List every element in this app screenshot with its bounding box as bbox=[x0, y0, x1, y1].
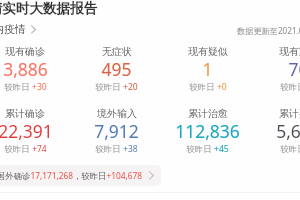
button[interactable]: 累计确诊 bbox=[0, 107, 71, 155]
staticText: 较昨日 +45 bbox=[186, 143, 229, 155]
staticText: 3,886 bbox=[3, 57, 48, 81]
button[interactable]: 现有确诊 bbox=[0, 45, 71, 93]
button[interactable]: 现有重症 bbox=[253, 45, 300, 93]
staticText: 无症状 bbox=[102, 45, 132, 58]
staticText: 累计确诊 bbox=[5, 107, 45, 120]
button[interactable]: 无症状 bbox=[71, 45, 162, 93]
staticText: 较昨日 +0 bbox=[280, 143, 300, 155]
staticText: 70 bbox=[288, 57, 300, 81]
staticText: 495 bbox=[101, 57, 132, 81]
staticText: 疫情实时大数据报告 bbox=[0, 0, 98, 17]
staticText: 较昨日 +38 bbox=[95, 143, 138, 155]
button[interactable]: 境外输入 bbox=[71, 107, 162, 155]
button[interactable]: 现有疑似 bbox=[162, 45, 253, 93]
staticText: 22,391 bbox=[0, 119, 53, 143]
staticText: 数据更新至2021.03.19 bbox=[237, 25, 300, 36]
button[interactable]: 累计治愈 bbox=[162, 107, 253, 155]
staticText: 较昨日 +74 bbox=[4, 143, 47, 155]
button[interactable]: 累计死亡 bbox=[253, 107, 300, 155]
staticText: 境外输入 bbox=[97, 107, 137, 120]
button[interactable]: 国外确诊17,171,268，较昨日+104,678 bbox=[0, 165, 161, 186]
staticText: 累计治愈 bbox=[188, 107, 228, 120]
staticText: 国外确诊17,171,268，较昨日+104,678 bbox=[0, 170, 143, 181]
button[interactable]: 国内疫情 bbox=[0, 22, 36, 36]
staticText: 现有疑似 bbox=[188, 45, 228, 58]
staticText: 现有重症 bbox=[279, 45, 300, 58]
staticText: 较昨日 +30 bbox=[4, 81, 47, 93]
staticText: 国内疫情 bbox=[0, 22, 26, 36]
staticText: 现有确诊 bbox=[5, 45, 45, 58]
staticText: 112,836 bbox=[175, 119, 240, 143]
staticText: 5,609 bbox=[276, 119, 300, 143]
staticText: 较昨日 +0 bbox=[189, 81, 227, 93]
staticText: 累计死亡 bbox=[279, 107, 300, 120]
staticText: 较昨日 +20 bbox=[95, 81, 138, 93]
staticText: 较昨日 +0 bbox=[280, 81, 300, 93]
staticText: 1 bbox=[202, 57, 213, 81]
staticText: 7,912 bbox=[94, 119, 139, 143]
